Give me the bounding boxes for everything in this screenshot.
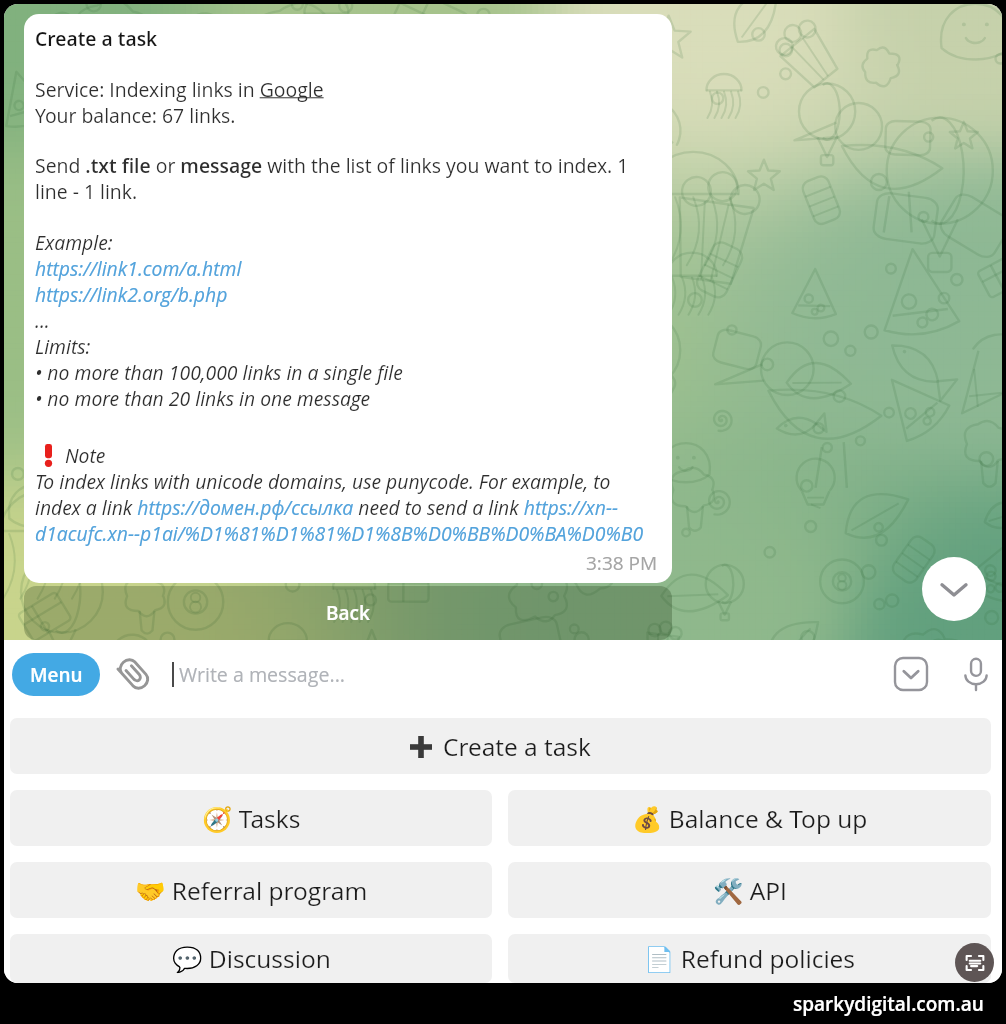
staticText: Send .txt file or message with the list …: [35, 152, 659, 204]
button[interactable]: Emoji: [886, 649, 936, 699]
staticText: To index links with unicode domains, use…: [35, 468, 650, 546]
staticText: Write a message...: [179, 661, 346, 688]
button[interactable]: 🛠 API: [508, 862, 991, 918]
button[interactable]: Scroll to bottom: [922, 557, 986, 621]
staticText: Create a task: [35, 25, 158, 51]
staticText: 💬 Discussion: [172, 942, 331, 975]
button[interactable]: Voice message: [951, 649, 1001, 699]
staticText: 3:38 PM: [586, 550, 658, 576]
staticText: Service: Indexing links in Google Your b…: [35, 76, 324, 128]
button[interactable]: Menu: [12, 653, 100, 696]
button[interactable]: 📄 Refund policies: [508, 934, 991, 983]
button[interactable]: 💰 Balance & Top up: [508, 790, 991, 846]
staticText: Example: https://link1.com/a.html https:…: [35, 229, 403, 411]
staticText: Create a task: [443, 730, 591, 763]
staticText: Menu: [30, 662, 83, 688]
staticText: 🛠 API: [713, 874, 787, 907]
staticText: sparkydigital.com.au: [793, 991, 984, 1017]
staticText: Back: [326, 600, 370, 626]
button[interactable]: Create a task: [24, 14, 672, 583]
button[interactable]: Select text: [955, 943, 994, 982]
staticText: 🧭 Tasks: [202, 802, 301, 835]
button[interactable]: Create a task: [10, 718, 991, 774]
staticText: Note: [65, 442, 106, 468]
staticText: 🤝 Referral program: [135, 874, 368, 907]
button[interactable]: Back: [24, 586, 672, 640]
button[interactable]: 💬 Discussion: [10, 934, 492, 983]
button[interactable]: 🤝 Referral program: [10, 862, 492, 918]
button[interactable]: 🧭 Tasks: [10, 790, 492, 846]
button[interactable]: Attach: [112, 652, 156, 696]
staticText: 📄 Refund policies: [644, 942, 856, 975]
staticText: 💰 Balance & Top up: [632, 802, 868, 835]
